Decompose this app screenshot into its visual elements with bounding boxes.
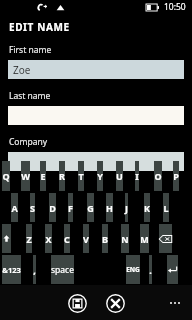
staticText: E: [40, 170, 46, 182]
button[interactable]: L: [163, 193, 169, 222]
staticText: P: [173, 170, 179, 182]
button[interactable]: Y: [97, 161, 103, 191]
button[interactable]: More options: [166, 293, 184, 313]
staticText: F: [68, 202, 73, 214]
staticText: D: [49, 202, 56, 214]
staticText: First name: [9, 44, 52, 56]
staticText: V: [83, 233, 89, 245]
button[interactable]: R: [59, 161, 65, 191]
button[interactable]: [8, 152, 184, 171]
button[interactable]: space: [51, 255, 74, 284]
button[interactable]: F: [68, 193, 73, 222]
button[interactable]: Z: [26, 224, 32, 253]
button[interactable]: N: [121, 224, 129, 253]
button[interactable]: ENG: [126, 255, 140, 284]
button[interactable]: Save: [65, 291, 89, 315]
button[interactable]: ,: [33, 255, 36, 284]
button[interactable]: C: [64, 224, 70, 253]
button[interactable]: .: [149, 255, 152, 284]
staticText: H: [106, 202, 113, 214]
staticText: S: [30, 202, 35, 214]
staticText: I: [135, 170, 139, 182]
staticText: K: [144, 202, 150, 214]
staticText: M: [140, 233, 149, 245]
staticText: space: [51, 264, 74, 276]
staticText: .: [149, 264, 152, 276]
staticText: A: [11, 202, 18, 214]
staticText: Z: [26, 233, 32, 245]
staticText: G: [87, 202, 94, 214]
staticText: L: [163, 202, 169, 214]
button[interactable]: Shift: [2, 224, 11, 253]
button[interactable]: Zoe: [8, 60, 184, 79]
button[interactable]: K: [144, 193, 150, 222]
button[interactable]: O: [154, 161, 162, 191]
button[interactable]: J: [125, 193, 128, 222]
button[interactable]: I: [135, 161, 139, 191]
button[interactable]: H: [106, 193, 113, 222]
button[interactable]: B: [102, 224, 108, 253]
button[interactable]: E: [40, 161, 46, 191]
staticText: Y: [97, 170, 103, 182]
staticText: C: [64, 233, 70, 245]
button[interactable]: U: [116, 161, 123, 191]
button[interactable]: T: [78, 161, 84, 191]
staticText: Zoe: [13, 63, 31, 77]
button[interactable]: G: [87, 193, 94, 222]
staticText: Q: [2, 170, 10, 182]
button[interactable]: P: [173, 161, 179, 191]
staticText: ,: [33, 264, 36, 276]
staticText: O: [154, 170, 162, 182]
button[interactable]: Enter: [167, 255, 178, 284]
button[interactable]: D: [49, 193, 56, 222]
button[interactable]: Q: [2, 161, 10, 191]
staticText: N: [121, 233, 129, 245]
button[interactable]: X: [45, 224, 52, 253]
staticText: X: [45, 233, 52, 245]
button[interactable]: M: [140, 224, 149, 253]
staticText: 10:50: [164, 1, 186, 13]
staticText: T: [78, 170, 84, 182]
button[interactable]: Backspace: [159, 224, 172, 253]
button[interactable]: S: [30, 193, 35, 222]
staticText: ENG: [126, 265, 140, 274]
button[interactable]: V: [83, 224, 89, 253]
staticText: EDIT NAME: [9, 20, 70, 34]
button[interactable]: A: [11, 193, 18, 222]
staticText: B: [102, 233, 108, 245]
staticText: Company: [9, 136, 48, 148]
button[interactable]: W: [21, 161, 30, 191]
staticText: W: [21, 170, 30, 182]
staticText: J: [125, 202, 128, 214]
staticText: U: [116, 170, 123, 182]
staticText: R: [59, 170, 65, 182]
staticText: &123: [2, 265, 21, 275]
button[interactable]: Cancel: [103, 291, 127, 315]
staticText: Last name: [9, 90, 51, 102]
button[interactable]: &123: [2, 255, 21, 284]
